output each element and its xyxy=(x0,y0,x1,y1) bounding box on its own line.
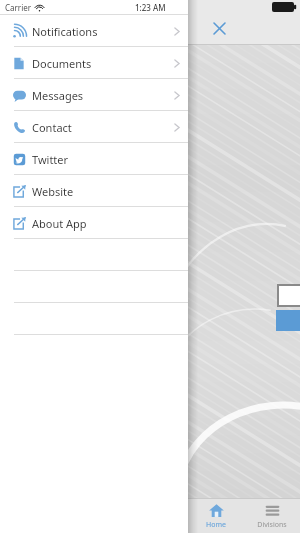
button[interactable]: Contact xyxy=(0,111,188,143)
button[interactable]: Divisions xyxy=(244,499,300,533)
staticText: Contact xyxy=(32,120,72,135)
staticText: Notifications xyxy=(32,24,98,39)
button[interactable]: About App xyxy=(0,207,188,239)
staticText: Home xyxy=(206,520,226,530)
button[interactable] xyxy=(0,303,188,335)
button[interactable]: Messages xyxy=(0,79,188,111)
staticText: Messages xyxy=(32,88,84,103)
button[interactable]: Notifications xyxy=(0,15,188,47)
button[interactable] xyxy=(0,239,188,271)
button[interactable]: Documents xyxy=(0,47,188,79)
button[interactable]: Close xyxy=(208,17,230,39)
button[interactable] xyxy=(0,271,188,303)
staticText: Divisions xyxy=(257,520,287,530)
staticText: 1:23 AM xyxy=(135,2,166,13)
staticText: Twitter xyxy=(32,152,69,167)
button[interactable] xyxy=(278,285,300,306)
staticText: Website xyxy=(32,184,74,199)
button[interactable]: Website xyxy=(0,175,188,207)
button[interactable]: Home xyxy=(188,499,244,533)
staticText: Documents xyxy=(32,56,92,71)
staticText: Carrier xyxy=(5,2,32,13)
staticText: About App xyxy=(32,216,87,231)
button[interactable]: Twitter xyxy=(0,143,188,175)
